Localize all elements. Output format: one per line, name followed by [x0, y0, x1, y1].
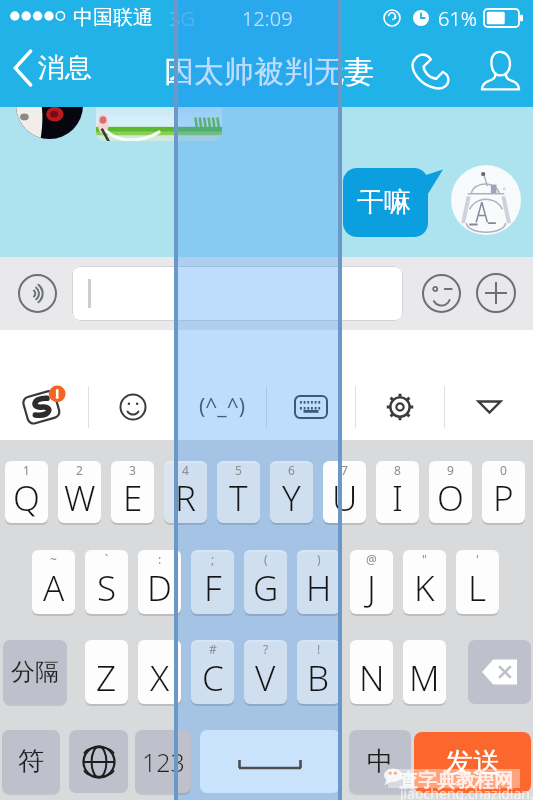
staticText: G — [253, 564, 279, 612]
staticText: 12:09 — [242, 5, 293, 32]
button[interactable]: Sogou input — [0, 373, 88, 440]
button[interactable]: 消息 — [12, 46, 92, 90]
staticText: 123 — [142, 745, 185, 779]
staticText: ) — [317, 551, 321, 567]
button[interactable]: Kaomoji — [178, 373, 266, 440]
button[interactable]: ' — [456, 550, 499, 614]
staticText: : — [158, 551, 162, 567]
staticText: 中国联通 — [73, 5, 153, 30]
staticText: N — [359, 654, 385, 702]
staticText: ( — [264, 551, 268, 567]
staticText: E — [123, 474, 143, 522]
staticText: @ — [366, 551, 377, 567]
button[interactable]: : — [138, 550, 181, 614]
button[interactable]: M — [403, 640, 446, 704]
staticText: C — [202, 654, 224, 702]
staticText: 8 — [394, 462, 401, 478]
button[interactable]: ! — [297, 640, 340, 704]
button[interactable]: ? — [244, 640, 287, 704]
staticText: ~ — [50, 551, 57, 567]
staticText: (^_^) — [199, 392, 245, 421]
button[interactable]: Switch language — [69, 730, 128, 793]
staticText: M — [409, 654, 440, 702]
staticText: ! — [317, 641, 321, 657]
staticText: T — [229, 474, 248, 522]
button[interactable]: 中 — [349, 730, 411, 793]
button[interactable]: 2 — [58, 461, 101, 523]
button[interactable]: 4 — [164, 461, 207, 523]
staticText: " — [422, 551, 427, 567]
button[interactable]: 分隔 — [3, 640, 67, 704]
staticText: A — [43, 564, 65, 612]
staticText: Q — [13, 474, 40, 522]
staticText: 0 — [500, 462, 507, 478]
button[interactable]: 1 — [5, 461, 48, 523]
staticText: V — [255, 654, 276, 702]
button[interactable]: Emoji — [89, 373, 177, 440]
staticText: U — [332, 474, 358, 522]
staticText: H — [306, 564, 332, 612]
staticText: W — [64, 474, 96, 522]
staticText: jiaocheng.chazidian.com — [400, 784, 533, 800]
button[interactable]: N — [350, 640, 393, 704]
staticText: ` — [105, 551, 109, 567]
staticText: ' — [476, 551, 479, 567]
button[interactable]: 8 — [376, 461, 419, 523]
staticText: B — [307, 654, 330, 702]
staticText: Z — [96, 654, 117, 702]
button[interactable]: Call — [404, 44, 460, 96]
staticText: O — [437, 474, 464, 522]
staticText: 3G — [169, 5, 195, 32]
button[interactable]: More options — [468, 265, 524, 321]
button[interactable]: Keyboard layout — [267, 373, 355, 440]
staticText: 1 — [23, 462, 30, 478]
button[interactable]: Z — [85, 640, 128, 704]
button[interactable]: 0 — [482, 461, 525, 523]
staticText: ? — [263, 641, 269, 657]
button[interactable]: Emoji — [413, 265, 469, 321]
staticText: 2 — [76, 462, 83, 478]
button[interactable]: Settings — [356, 373, 444, 440]
button[interactable]: 6 — [270, 461, 313, 523]
button[interactable]: Backspace — [468, 640, 531, 704]
staticText: I — [392, 474, 403, 522]
staticText: J — [367, 564, 376, 612]
button[interactable]: ` — [85, 550, 128, 614]
staticText: # — [209, 641, 217, 657]
staticText: 符 — [18, 745, 44, 778]
staticText: 6 — [288, 462, 295, 478]
staticText: 消息 — [38, 51, 92, 85]
staticText: 发送 — [445, 745, 501, 780]
button[interactable]: 符 — [2, 730, 60, 793]
button[interactable]: 5 — [217, 461, 260, 523]
staticText: 分隔 — [11, 657, 59, 687]
button[interactable] — [72, 266, 403, 321]
button[interactable]: X — [138, 640, 181, 704]
button[interactable]: Voice message — [9, 265, 65, 321]
staticText: ; — [211, 551, 215, 567]
staticText: 4 — [182, 462, 189, 478]
button[interactable]: @ — [350, 550, 393, 614]
button[interactable]: 发送 — [414, 732, 531, 793]
button[interactable]: # — [191, 640, 234, 704]
staticText: 干嘛 — [357, 185, 411, 219]
staticText: 中 — [367, 745, 393, 778]
staticText: 3 — [129, 462, 136, 478]
button[interactable]: Hide keyboard — [445, 373, 533, 440]
staticText: 查字典教程网 — [399, 769, 513, 793]
button[interactable]: ( — [244, 550, 287, 614]
button[interactable]: 9 — [429, 461, 472, 523]
button[interactable]: " — [403, 550, 446, 614]
button[interactable]: ) — [297, 550, 340, 614]
button[interactable]: Space — [200, 730, 340, 793]
button[interactable]: Profile — [472, 44, 528, 96]
staticText: Y — [282, 474, 301, 522]
staticText: 5 — [235, 462, 242, 478]
button[interactable]: 3 — [111, 461, 154, 523]
button[interactable]: ; — [191, 550, 234, 614]
staticText: F — [204, 564, 222, 612]
button[interactable]: 7 — [323, 461, 366, 523]
button[interactable]: ~ — [32, 550, 75, 614]
button[interactable]: 123 — [135, 730, 191, 793]
staticText: 61% — [438, 5, 478, 32]
